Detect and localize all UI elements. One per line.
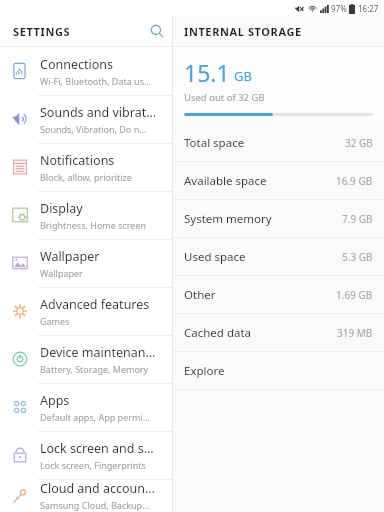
button[interactable]: Cloud and accoun… xyxy=(0,479,172,512)
staticText: 1.69 GB xyxy=(336,288,373,302)
button[interactable]: Lock screen and s… xyxy=(0,431,172,479)
staticText: Wallpaper xyxy=(40,267,83,279)
staticText: INTERNAL STORAGE xyxy=(184,24,302,39)
staticText: Used out of 32 GB xyxy=(184,91,265,104)
staticText: Cached data xyxy=(184,325,252,341)
staticText: Apps xyxy=(40,392,70,409)
staticText: 5.3 GB xyxy=(342,250,373,264)
staticText: GB xyxy=(234,67,252,85)
staticText: Sounds, Vibration, Do n… xyxy=(40,123,147,135)
button[interactable]: Apps xyxy=(0,383,172,431)
staticText: Block, allow, prioritize xyxy=(40,171,132,183)
button[interactable]: Connections xyxy=(0,47,172,95)
button[interactable]: Notifications xyxy=(0,143,172,191)
button[interactable]: System memory xyxy=(173,200,384,237)
staticText: Lock screen, Fingerprints xyxy=(40,459,146,471)
button[interactable]: Advanced features xyxy=(0,287,172,335)
staticText: Device maintenan… xyxy=(40,344,156,361)
staticText: Advanced features xyxy=(40,296,150,313)
staticText: Available space xyxy=(184,173,267,189)
staticText: Notifications xyxy=(40,152,115,169)
staticText: Brightness, Home screen xyxy=(40,219,147,231)
staticText: 97% xyxy=(331,3,347,14)
staticText: 32 GB xyxy=(345,136,373,150)
staticText: Lock screen and s… xyxy=(40,440,154,457)
staticText: Explore xyxy=(184,363,225,379)
staticText: Battery, Storage, Memory xyxy=(40,363,149,375)
button[interactable]: Cached data xyxy=(173,314,384,351)
button[interactable]: Available space xyxy=(173,162,384,199)
button[interactable]: Sounds and vibrat… xyxy=(0,95,172,143)
staticText: SETTINGS xyxy=(13,24,71,39)
staticText: 15.1 xyxy=(184,57,230,88)
button[interactable]: Display xyxy=(0,191,172,239)
staticText: Other xyxy=(184,287,216,303)
staticText: Total space xyxy=(184,135,245,151)
button[interactable]: Other xyxy=(173,276,384,313)
staticText: Display xyxy=(40,200,83,217)
staticText: Cloud and accoun… xyxy=(40,480,155,497)
staticText: 16.9 GB xyxy=(336,174,373,188)
staticText: Used space xyxy=(184,249,246,265)
staticText: 7.9 GB xyxy=(342,212,373,226)
button[interactable]: Search xyxy=(142,16,172,46)
staticText: Default apps, App permi… xyxy=(40,411,150,423)
staticText: Games xyxy=(40,315,70,327)
button[interactable]: Total space xyxy=(173,124,384,161)
button[interactable]: Explore xyxy=(173,352,384,389)
staticText: 319 MB xyxy=(337,326,373,340)
button[interactable]: Device maintenan… xyxy=(0,335,172,383)
staticText: Sounds and vibrat… xyxy=(40,104,157,121)
button[interactable]: Used space xyxy=(173,238,384,275)
staticText: Wi-Fi, Bluetooth, Data us… xyxy=(40,75,152,87)
staticText: Samsung Cloud, Backup… xyxy=(40,499,150,511)
staticText: Connections xyxy=(40,56,113,73)
staticText: System memory xyxy=(184,211,272,227)
staticText: 16:27 xyxy=(358,3,379,14)
button[interactable]: Wallpaper xyxy=(0,239,172,287)
staticText: Wallpaper xyxy=(40,248,100,265)
